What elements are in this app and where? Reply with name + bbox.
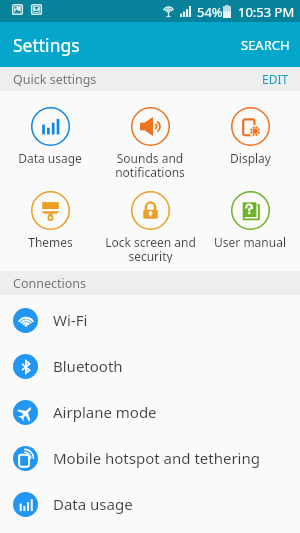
button[interactable]: Data usage	[0, 107, 100, 179]
staticText: Mobile hotspot and tethering	[53, 448, 260, 468]
button[interactable]: Themes	[0, 191, 100, 263]
button[interactable]: SEARCH	[227, 22, 300, 67]
button[interactable]: Sounds and notifications	[100, 107, 200, 179]
staticText: 10:53 PM	[238, 3, 295, 21]
staticText: User manual	[214, 234, 286, 250]
staticText: 54%	[197, 3, 223, 21]
staticText: Settings	[13, 33, 80, 57]
staticText: Sounds and notifications	[115, 150, 185, 179]
button[interactable]: Wi-Fi	[0, 297, 300, 343]
staticText: SEARCH	[241, 36, 290, 54]
button[interactable]: User manual	[200, 191, 300, 263]
button[interactable]: EDIT	[248, 67, 300, 91]
staticText: Lock screen and security	[105, 234, 196, 263]
button[interactable]: Bluetooth	[0, 343, 300, 389]
button[interactable]: Lock screen and security	[100, 191, 200, 263]
staticText: Quick settings	[13, 71, 97, 88]
button[interactable]: Airplane mode	[0, 389, 300, 435]
staticText: Themes	[28, 234, 73, 250]
staticText: Data usage	[53, 494, 133, 514]
button[interactable]: Data usage	[0, 481, 300, 527]
staticText: Connections	[13, 275, 86, 292]
button[interactable]: Mobile hotspot and tethering	[0, 435, 300, 481]
staticText: Data usage	[18, 150, 82, 166]
staticText: Wi-Fi	[53, 310, 88, 330]
staticText: EDIT	[262, 71, 289, 87]
staticText: Bluetooth	[53, 356, 123, 376]
staticText: Airplane mode	[53, 402, 157, 422]
staticText: Display	[230, 150, 271, 166]
button[interactable]: Display	[200, 107, 300, 179]
